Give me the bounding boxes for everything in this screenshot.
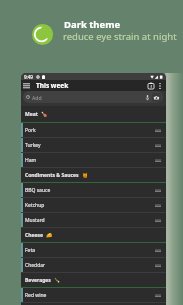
staticText: reduce eye strain at night [63,30,177,43]
button[interactable]: Add [23,91,163,103]
button[interactable]: Shopping lists [146,81,156,91]
staticText: Meat [25,111,38,118]
button[interactable]: Voice input [144,94,151,101]
staticText: 9:49 [24,74,33,80]
button[interactable]: Ketchup [21,198,166,213]
button[interactable]: Mustard [21,213,166,228]
button[interactable]: Feta [21,243,166,258]
staticText: 🧀 [46,232,53,238]
button[interactable]: BBQ sauce [21,183,166,198]
button[interactable]: Open navigation menu [21,80,32,91]
staticText: 🍯 [82,172,89,178]
staticText: Add [32,94,42,101]
button[interactable]: Condiments & Sauces [21,168,166,183]
staticText: This week [36,81,69,90]
button[interactable]: Ham [21,153,166,168]
staticText: Feta [25,247,36,254]
staticText: Dark theme [64,18,121,31]
button[interactable]: Meat [21,106,166,123]
staticText: BBQ sauce [25,187,51,194]
staticText: Cheddar [25,262,46,269]
button[interactable]: More options [156,82,164,90]
button[interactable]: Beverages [21,273,166,288]
staticText: Ham [25,157,37,164]
button[interactable]: Red wine [21,288,166,303]
staticText: Condiments & Sauces [25,172,79,179]
button[interactable]: Scan with camera [152,93,161,102]
staticText: 🍾 [54,277,61,283]
staticText: Beverages [25,277,51,284]
staticText: Cheese [25,232,43,239]
staticText: 🍗 [41,111,48,117]
button[interactable]: Turkey [21,138,166,153]
staticText: Red wine [25,292,47,299]
button[interactable]: Pork [21,123,166,138]
staticText: Turkey [25,142,41,149]
button[interactable]: Cheese [21,228,166,243]
staticText: Ketchup [25,202,45,209]
button[interactable]: Cheddar [21,258,166,273]
staticText: Pork [25,127,36,134]
staticText: Mustard [25,217,45,224]
button[interactable]: Dark theme [32,21,178,47]
